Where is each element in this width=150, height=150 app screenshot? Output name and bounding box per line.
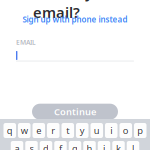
staticText: h bbox=[86, 142, 92, 150]
button[interactable]: d bbox=[40, 141, 52, 150]
staticText: Sign up with phone instead bbox=[22, 14, 127, 25]
button[interactable]: w bbox=[18, 123, 30, 138]
button[interactable]: y bbox=[76, 123, 88, 138]
staticText: q bbox=[7, 124, 13, 137]
staticText: o bbox=[123, 124, 129, 137]
button[interactable]: f bbox=[54, 141, 67, 150]
button[interactable]: k bbox=[112, 141, 125, 150]
button[interactable]: g bbox=[69, 141, 81, 150]
staticText: e bbox=[36, 124, 41, 137]
button[interactable]: l bbox=[127, 141, 139, 150]
button[interactable]: t bbox=[61, 123, 74, 138]
button[interactable]: p bbox=[134, 123, 146, 138]
staticText: r bbox=[51, 124, 55, 137]
staticText: w bbox=[21, 124, 28, 137]
staticText: Continue bbox=[54, 105, 96, 118]
staticText: p bbox=[137, 124, 143, 137]
staticText: g bbox=[72, 142, 78, 150]
staticText: EMAIL bbox=[16, 38, 36, 46]
staticText: d bbox=[43, 142, 49, 150]
button[interactable]: i bbox=[105, 123, 117, 138]
staticText: j bbox=[103, 142, 105, 150]
button[interactable]: r bbox=[47, 123, 59, 138]
button[interactable]: e bbox=[32, 123, 45, 138]
button[interactable]: u bbox=[90, 123, 103, 138]
button[interactable]: Continue bbox=[32, 104, 118, 120]
staticText: i bbox=[110, 124, 112, 137]
button[interactable]: o bbox=[119, 123, 132, 138]
staticText: y bbox=[80, 124, 85, 137]
staticText: f bbox=[59, 142, 62, 150]
button[interactable]: Sign up with phone instead bbox=[18, 12, 131, 27]
staticText: l bbox=[132, 142, 134, 150]
staticText: s bbox=[29, 142, 33, 150]
button[interactable]: q bbox=[3, 123, 16, 138]
button[interactable] bbox=[0, 50, 134, 62]
staticText: What's your email? bbox=[33, 0, 117, 22]
button[interactable]: s bbox=[25, 141, 38, 150]
button[interactable]: h bbox=[83, 141, 96, 150]
button[interactable]: j bbox=[98, 141, 110, 150]
staticText: u bbox=[94, 124, 100, 137]
staticText: a bbox=[14, 142, 19, 150]
staticText: t bbox=[66, 124, 69, 137]
button[interactable]: a bbox=[11, 141, 23, 150]
staticText: k bbox=[116, 142, 121, 150]
